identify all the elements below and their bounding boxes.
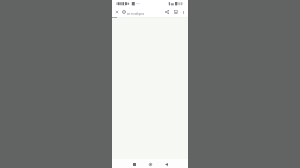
button[interactable]: Close tab bbox=[113, 8, 121, 16]
button[interactable]: Home bbox=[146, 160, 154, 168]
button[interactable]: Share bbox=[163, 8, 171, 16]
button[interactable]: Back bbox=[162, 160, 170, 168]
button[interactable]: Recent apps bbox=[130, 160, 138, 168]
staticText: en.m.wikipedia.org bbox=[127, 12, 144, 16]
button[interactable]: Site information bbox=[120, 8, 128, 16]
button[interactable]: Bookmark bbox=[172, 8, 180, 16]
button[interactable]: More options bbox=[179, 8, 187, 16]
